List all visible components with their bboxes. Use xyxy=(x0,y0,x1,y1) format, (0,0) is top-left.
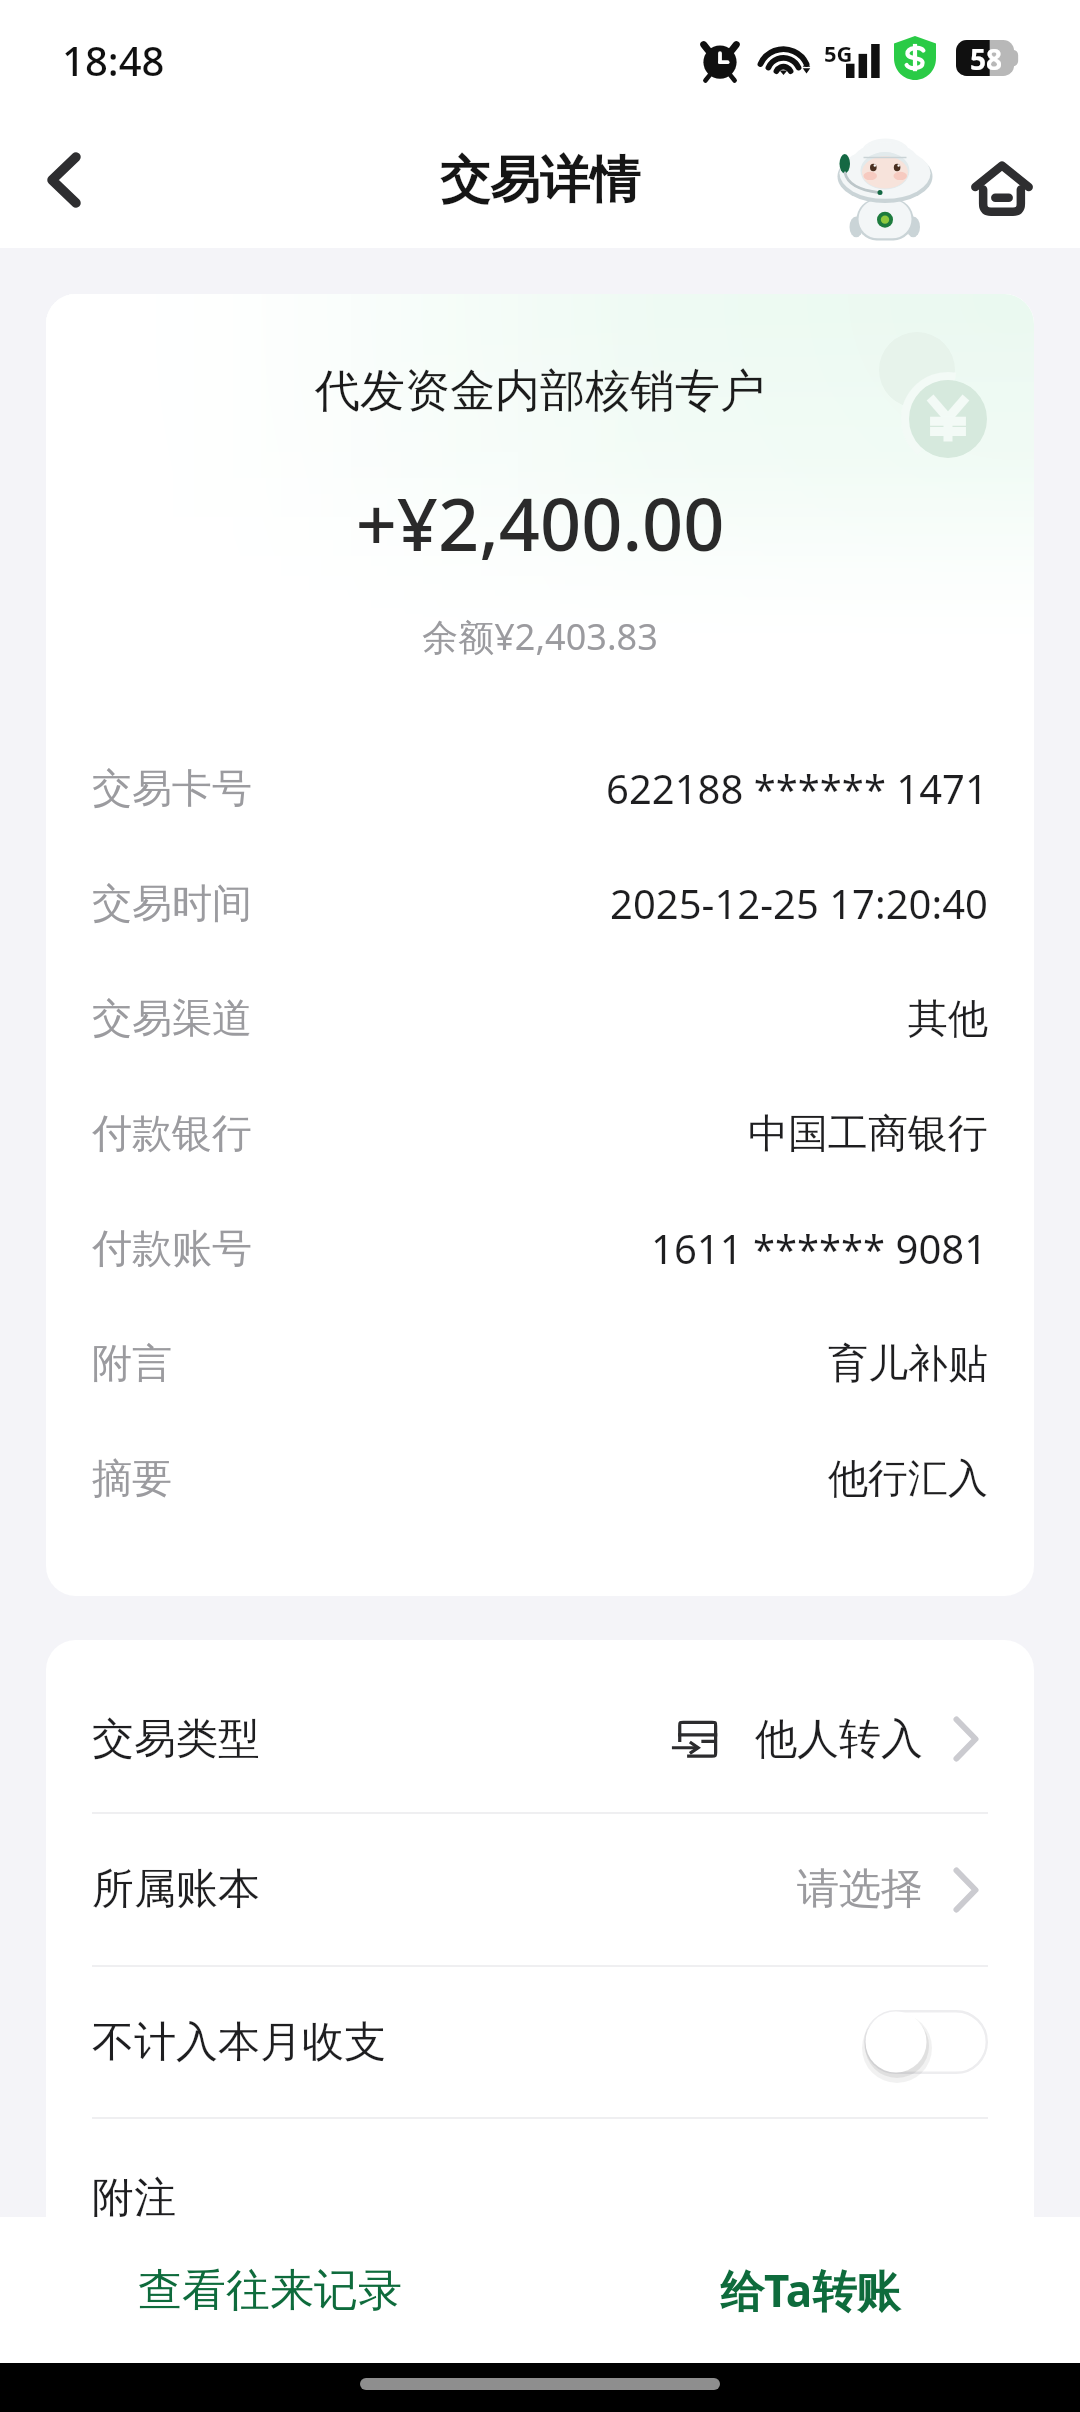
staticText: 代发资金内部核销专户 xyxy=(46,363,1034,420)
staticText: 5G xyxy=(824,38,853,68)
button[interactable]: Back xyxy=(0,112,128,248)
button[interactable]: Home xyxy=(947,132,1057,242)
button[interactable]: Assistant xyxy=(830,135,940,245)
staticText: 余额¥2,403.83 xyxy=(46,612,1034,661)
staticText: 他人转入 xyxy=(755,1713,923,1766)
staticText: 交易卡号 xyxy=(92,763,252,813)
staticText: 18:48 xyxy=(62,33,165,87)
staticText: 交易时间 xyxy=(92,878,252,928)
staticText: 育儿补贴 xyxy=(828,1338,988,1388)
staticText: 附言 xyxy=(92,1338,172,1388)
staticText: 查看往来记录 xyxy=(138,2263,402,2318)
staticText: 交易详情 xyxy=(440,149,640,212)
button[interactable]: 附注 xyxy=(46,2119,1034,2277)
button[interactable]: 查看往来记录 xyxy=(0,2217,540,2363)
staticText: 2025-12-25 17:20:40 xyxy=(610,876,988,930)
button[interactable]: Toggle exclude from monthly total xyxy=(864,2010,988,2074)
staticText: 付款账号 xyxy=(92,1223,252,1273)
staticText: 给Ta转账 xyxy=(720,2260,901,2320)
staticText: 中国工商银行 xyxy=(748,1108,988,1158)
staticText: 1611 ****** 9081 xyxy=(651,1221,988,1275)
staticText: 其他 xyxy=(908,993,988,1043)
staticText: 所属账本 xyxy=(92,1863,260,1916)
button[interactable]: 所属账本 xyxy=(46,1814,1034,1965)
staticText: 622188 ****** 1471 xyxy=(606,761,988,815)
staticText: 交易类型 xyxy=(92,1713,260,1766)
staticText: 交易渠道 xyxy=(92,993,252,1043)
staticText: +¥2,400.00 xyxy=(46,474,1034,572)
staticText: 付款银行 xyxy=(92,1108,252,1158)
staticText: 58 xyxy=(970,40,1003,76)
staticText: 请选择 xyxy=(797,1863,923,1916)
staticText: 他行汇入 xyxy=(828,1453,988,1503)
staticText: 附注 xyxy=(92,2172,176,2225)
staticText: 摘要 xyxy=(92,1453,172,1503)
button[interactable]: 给Ta转账 xyxy=(540,2217,1080,2363)
staticText: 不计入本月收支 xyxy=(92,2016,386,2069)
button[interactable]: 交易类型 xyxy=(46,1666,1034,1812)
